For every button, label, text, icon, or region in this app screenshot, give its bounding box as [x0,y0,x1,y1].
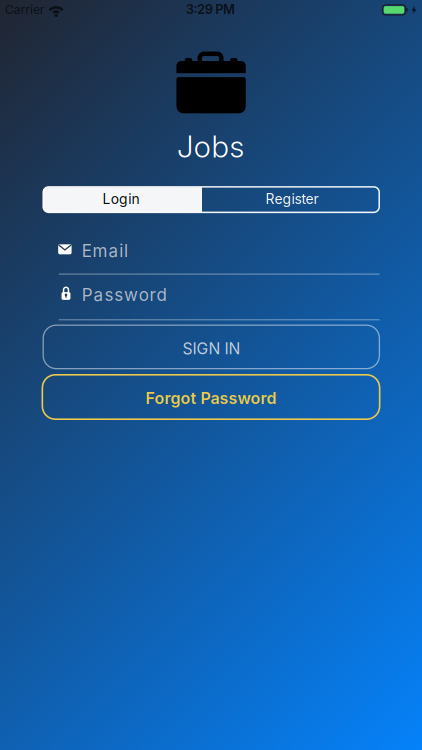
staticText: Password [82,285,166,305]
button[interactable]: Login [43,187,202,212]
button[interactable]: Forgot Password [42,375,380,419]
button[interactable]: Password [43,283,380,323]
staticText: Carrier [5,2,45,17]
staticText: 3:29 PM [186,1,235,17]
staticText: Jobs [177,129,244,165]
staticText: Login [102,191,140,207]
button[interactable]: Register [202,187,379,212]
staticText: Register [265,191,318,207]
staticText: Forgot Password [145,388,276,408]
staticText: SIGN IN [183,339,241,358]
staticText: Email [82,240,128,261]
button[interactable]: Email [43,238,380,278]
button[interactable]: SIGN IN [43,325,379,369]
